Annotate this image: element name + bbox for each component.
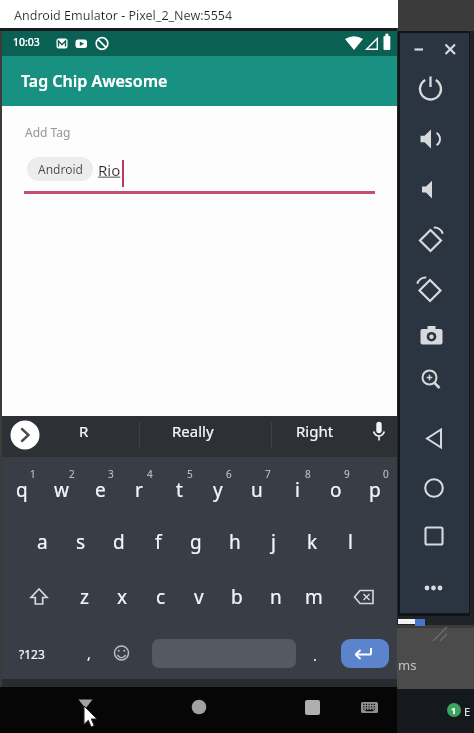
staticText: y — [213, 477, 223, 503]
staticText: Android — [38, 161, 83, 177]
button[interactable]: e — [83, 475, 117, 505]
staticText: k — [307, 529, 318, 555]
button[interactable] — [420, 424, 448, 452]
staticText: a — [37, 529, 48, 555]
button[interactable] — [417, 176, 445, 204]
button[interactable]: R — [54, 419, 114, 443]
staticText: Tag Chip Awesome — [21, 70, 168, 92]
staticText: n — [270, 584, 282, 610]
button[interactable] — [417, 322, 445, 350]
button[interactable] — [417, 365, 445, 393]
staticText: Android Emulator - Pixel_2_New:5554 — [14, 7, 233, 23]
staticText: l — [348, 529, 353, 555]
button[interactable]: b — [220, 582, 254, 612]
staticText: f — [155, 529, 162, 555]
button[interactable] — [420, 576, 448, 600]
button[interactable]: v — [182, 582, 216, 612]
button[interactable] — [298, 692, 328, 722]
button[interactable] — [420, 474, 448, 502]
button[interactable] — [417, 125, 445, 153]
button[interactable] — [24, 583, 54, 611]
button[interactable]: t — [162, 475, 196, 505]
button[interactable]: z — [67, 582, 101, 612]
staticText: 6 — [226, 467, 232, 479]
button[interactable] — [370, 420, 390, 446]
button[interactable]: u — [240, 475, 274, 505]
button[interactable]: Really — [148, 419, 238, 443]
staticText: d — [113, 529, 125, 555]
button[interactable]: y — [201, 475, 235, 505]
button[interactable]: Right — [275, 419, 355, 443]
button[interactable]: Android — [27, 157, 93, 181]
button[interactable] — [184, 692, 214, 722]
button[interactable] — [410, 42, 426, 58]
button[interactable] — [350, 583, 380, 611]
button[interactable]: , — [77, 640, 101, 666]
staticText: 4 — [147, 467, 153, 479]
button[interactable] — [420, 522, 448, 550]
button[interactable]: w — [44, 475, 78, 505]
button[interactable]: x — [105, 582, 139, 612]
button[interactable]: j — [256, 527, 290, 557]
staticText: ?123 — [19, 646, 45, 662]
staticText: u — [251, 477, 263, 503]
button[interactable] — [358, 698, 382, 718]
staticText: 1 — [451, 704, 457, 716]
button[interactable] — [417, 276, 445, 304]
staticText: 7 — [265, 467, 271, 479]
button[interactable] — [110, 641, 134, 665]
staticText: o — [330, 477, 342, 503]
staticText: Really — [172, 421, 214, 441]
staticText: b — [231, 584, 243, 610]
button[interactable]: a — [25, 527, 59, 557]
button[interactable]: p — [358, 475, 392, 505]
button[interactable]: f — [141, 527, 175, 557]
staticText: Add Tag — [25, 124, 71, 140]
button[interactable] — [341, 639, 389, 668]
staticText: E — [464, 704, 471, 719]
button[interactable]: h — [218, 527, 252, 557]
staticText: q — [16, 477, 28, 503]
staticText: x — [117, 584, 128, 610]
staticText: 3 — [108, 467, 114, 479]
button[interactable] — [70, 692, 100, 722]
staticText: e — [95, 477, 106, 503]
button[interactable]: m — [297, 582, 331, 612]
staticText: i — [295, 477, 300, 503]
button[interactable] — [8, 420, 41, 450]
staticText: g — [190, 529, 202, 555]
staticText: 0 — [383, 467, 389, 479]
staticText: j — [271, 529, 276, 555]
staticText: 1 — [30, 467, 36, 479]
button[interactable] — [442, 42, 458, 58]
staticText: z — [80, 584, 89, 610]
staticText: 10:03 — [13, 35, 40, 49]
button[interactable]: d — [102, 527, 136, 557]
button[interactable] — [417, 226, 445, 254]
button[interactable]: q — [5, 475, 39, 505]
staticText: h — [229, 529, 241, 555]
staticText: Right — [296, 421, 334, 441]
button[interactable]: ?123 — [11, 641, 53, 667]
button[interactable]: g — [179, 527, 213, 557]
staticText: m — [305, 584, 323, 610]
button[interactable]: k — [295, 527, 329, 557]
button[interactable]: . — [303, 642, 327, 668]
staticText: . — [313, 646, 317, 665]
button[interactable]: r — [122, 475, 156, 505]
button[interactable]: i — [280, 475, 314, 505]
button[interactable]: n — [259, 582, 293, 612]
staticText: p — [369, 477, 381, 503]
button[interactable]: l — [333, 527, 367, 557]
button[interactable]: s — [64, 527, 98, 557]
staticText: v — [194, 584, 204, 610]
staticText: ms — [398, 656, 417, 674]
button[interactable] — [0, 56, 397, 106]
button[interactable] — [417, 75, 445, 103]
button[interactable]: o — [319, 475, 353, 505]
staticText: s — [76, 529, 86, 555]
staticText: 9 — [344, 467, 350, 479]
staticText: w — [54, 477, 69, 503]
button[interactable]: c — [144, 582, 178, 612]
